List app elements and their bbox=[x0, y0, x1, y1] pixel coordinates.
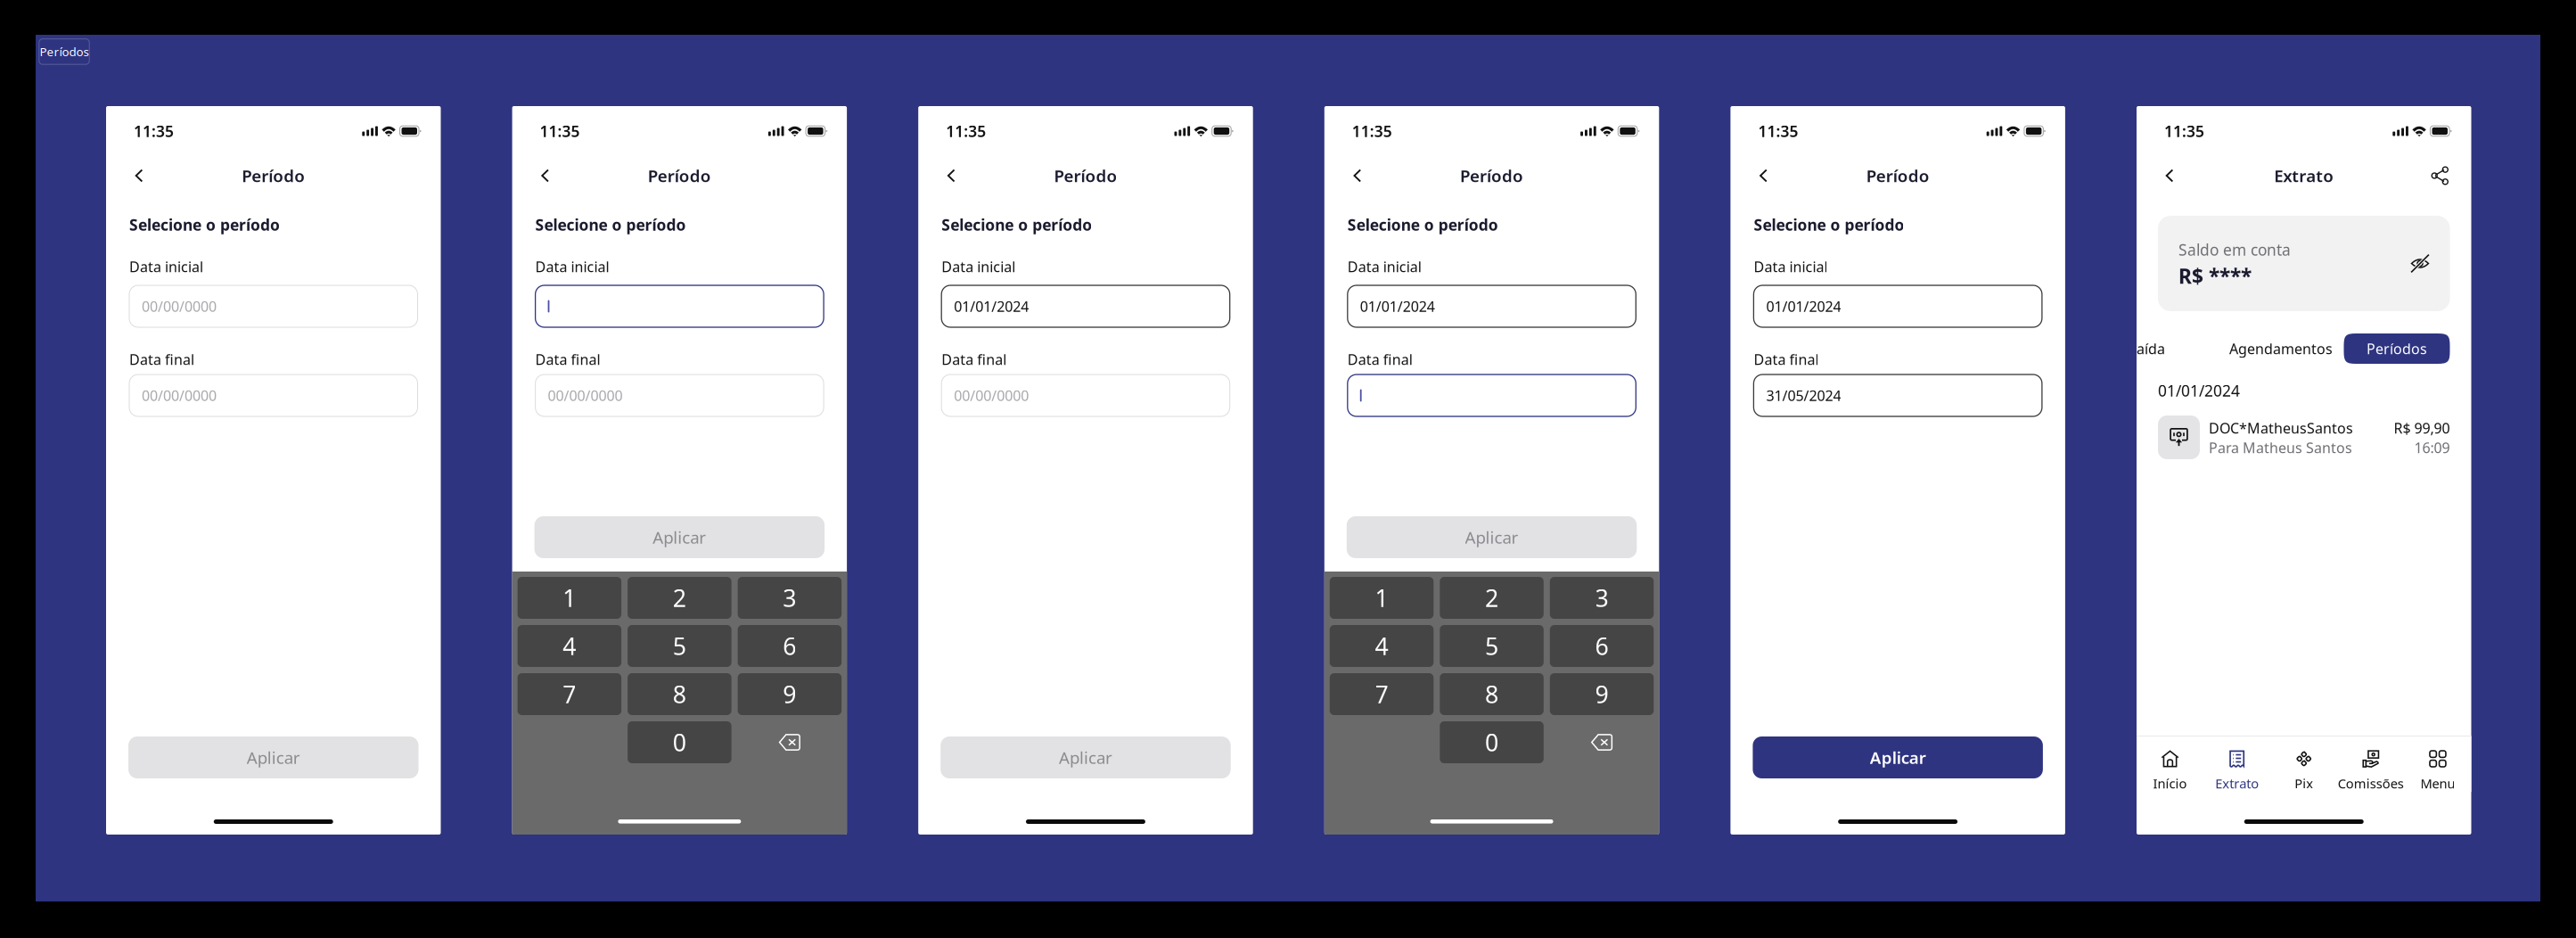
staticText: 0 bbox=[673, 727, 686, 758]
button[interactable]: 7 bbox=[518, 673, 621, 715]
button[interactable]: Início bbox=[2137, 736, 2204, 792]
staticText: 01/01/2024 bbox=[1360, 297, 1435, 316]
staticText: Aplicar bbox=[1465, 526, 1519, 548]
button[interactable]: 0 bbox=[628, 721, 731, 763]
staticText: Data final bbox=[1754, 350, 1819, 369]
staticText: Aplicar bbox=[1870, 746, 1926, 769]
staticText: Data final bbox=[1348, 350, 1413, 369]
button[interactable]: Voltar bbox=[526, 156, 565, 195]
button[interactable]: Apagar bbox=[1550, 721, 1654, 763]
staticText: Selecione o período bbox=[129, 214, 280, 235]
staticText: 11:35 bbox=[2164, 121, 2204, 141]
staticText: 9 bbox=[1595, 678, 1609, 710]
staticText: 8 bbox=[1485, 678, 1498, 710]
staticText: 5 bbox=[673, 630, 686, 662]
button[interactable]: 5 bbox=[628, 625, 731, 667]
staticText: Extrato bbox=[2215, 775, 2259, 792]
staticText: Agendamentos bbox=[2229, 339, 2333, 358]
staticText: Períodos bbox=[40, 44, 89, 59]
button[interactable]: Pix bbox=[2270, 736, 2337, 792]
button[interactable]: Menu bbox=[2404, 736, 2471, 792]
button[interactable]: 2 bbox=[1440, 577, 1544, 619]
staticText: 00/00/0000 bbox=[954, 386, 1029, 405]
staticText: 01/01/2024 bbox=[954, 297, 1029, 316]
button[interactable]: 0 bbox=[1440, 721, 1544, 763]
button[interactable]: Períodos bbox=[2344, 333, 2450, 364]
button[interactable]: 8 bbox=[628, 673, 731, 715]
button[interactable]: 9 bbox=[738, 673, 842, 715]
staticText: 11:35 bbox=[946, 121, 986, 141]
staticText: Data inicial bbox=[1348, 257, 1422, 276]
button[interactable]: Aplicar bbox=[1347, 516, 1637, 558]
button[interactable]: Voltar bbox=[2150, 156, 2189, 195]
staticText: R$ **** bbox=[2178, 262, 2252, 289]
button[interactable]: Voltar bbox=[119, 156, 159, 195]
staticText: 7 bbox=[1375, 678, 1388, 710]
staticText: Data inicial bbox=[941, 257, 1015, 276]
staticText: 16:09 bbox=[2414, 438, 2450, 457]
button[interactable]: 3 bbox=[1550, 577, 1654, 619]
staticText: Pix bbox=[2295, 775, 2313, 792]
staticText: 11:35 bbox=[540, 121, 580, 141]
staticText: Data inicial bbox=[129, 257, 203, 276]
staticText: Período bbox=[1460, 165, 1523, 187]
staticText: Período bbox=[648, 165, 711, 187]
staticText: 5 bbox=[1485, 630, 1498, 662]
button[interactable]: Aplicar bbox=[128, 736, 418, 778]
staticText: 9 bbox=[783, 678, 796, 710]
staticText: 4 bbox=[563, 630, 576, 662]
button[interactable]: Aplicar bbox=[1753, 736, 2043, 778]
button[interactable]: 7 bbox=[1330, 673, 1434, 715]
staticText: 0 bbox=[1485, 727, 1498, 758]
staticText: 7 bbox=[563, 678, 576, 710]
button[interactable]: Agendamentos bbox=[2229, 333, 2333, 364]
button[interactable]: Voltar bbox=[932, 156, 971, 195]
staticText: 11:35 bbox=[1758, 121, 1798, 141]
button[interactable]: 8 bbox=[1440, 673, 1544, 715]
button[interactable]: 1 bbox=[1330, 577, 1434, 619]
staticText: Selecione o período bbox=[1754, 214, 1904, 235]
staticText: Selecione o período bbox=[1348, 214, 1498, 235]
button[interactable]: 3 bbox=[738, 577, 842, 619]
staticText: Período bbox=[242, 165, 305, 187]
button[interactable]: Extrato bbox=[2204, 736, 2270, 792]
button[interactable]: 5 bbox=[1440, 625, 1544, 667]
button[interactable]: Compartilhar bbox=[2420, 156, 2460, 195]
staticText: 1 bbox=[1375, 582, 1388, 614]
staticText: Data inicial bbox=[535, 257, 609, 276]
staticText: aída bbox=[2137, 339, 2165, 358]
staticText: Para Matheus Santos bbox=[2209, 438, 2352, 457]
button[interactable]: Voltar bbox=[1338, 156, 1377, 195]
staticText: Selecione o período bbox=[941, 214, 1092, 235]
button[interactable]: 4 bbox=[1330, 625, 1434, 667]
staticText: Aplicar bbox=[653, 526, 706, 548]
staticText: Data inicial bbox=[1754, 257, 1828, 276]
staticText: DOC*MatheusSantos bbox=[2209, 419, 2353, 437]
button[interactable]: 2 bbox=[628, 577, 731, 619]
button[interactable]: 6 bbox=[1550, 625, 1654, 667]
staticText: Menu bbox=[2420, 775, 2455, 792]
staticText: 2 bbox=[1485, 582, 1498, 614]
staticText: Saldo em conta bbox=[2178, 239, 2291, 260]
button[interactable]: aída bbox=[2137, 333, 2165, 364]
staticText: 00/00/0000 bbox=[548, 386, 623, 405]
staticText: Aplicar bbox=[247, 746, 300, 769]
staticText: Data final bbox=[129, 350, 194, 369]
staticText: R$ 99,90 bbox=[2394, 419, 2450, 437]
staticText: 01/01/2024 bbox=[2158, 380, 2240, 401]
button[interactable]: Apagar bbox=[738, 721, 842, 763]
button[interactable]: 9 bbox=[1550, 673, 1654, 715]
button[interactable]: 6 bbox=[738, 625, 842, 667]
staticText: Extrato bbox=[2274, 165, 2334, 187]
button[interactable]: Aplicar bbox=[941, 736, 1231, 778]
staticText: 3 bbox=[783, 582, 796, 614]
button[interactable]: Ocultar saldo bbox=[2411, 254, 2429, 273]
button[interactable]: Voltar bbox=[1744, 156, 1783, 195]
button[interactable]: Aplicar bbox=[534, 516, 825, 558]
staticText: 8 bbox=[673, 678, 686, 710]
button[interactable]: Comissões bbox=[2337, 736, 2404, 792]
staticText: 3 bbox=[1595, 582, 1609, 614]
button[interactable]: 4 bbox=[518, 625, 621, 667]
button[interactable]: 1 bbox=[518, 577, 621, 619]
button[interactable]: DOC*MatheusSantos bbox=[2137, 416, 2471, 459]
